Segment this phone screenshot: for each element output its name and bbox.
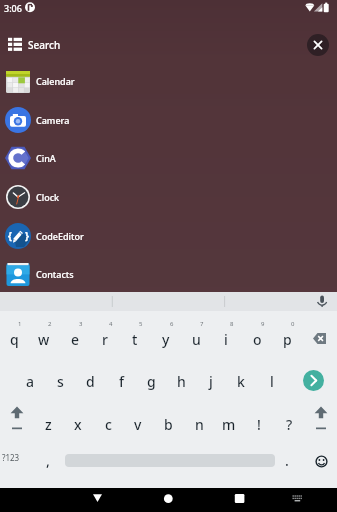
staticText: r bbox=[102, 330, 108, 349]
button[interactable]: x bbox=[64, 411, 92, 437]
staticText: t bbox=[132, 330, 138, 349]
staticText: Camera bbox=[36, 114, 70, 126]
staticText: a bbox=[26, 372, 35, 391]
button[interactable]: u bbox=[182, 326, 210, 352]
staticText: s bbox=[57, 372, 64, 391]
button[interactable]: g bbox=[137, 368, 165, 394]
button[interactable] bbox=[306, 395, 336, 437]
button[interactable]: i bbox=[212, 326, 240, 352]
staticText: Clock bbox=[36, 191, 60, 203]
button[interactable]: f bbox=[107, 368, 135, 394]
staticText: b bbox=[164, 415, 173, 434]
staticText: w bbox=[38, 330, 50, 349]
staticText: v bbox=[134, 415, 142, 434]
button[interactable]: n bbox=[185, 411, 213, 437]
staticText: f bbox=[119, 372, 124, 391]
staticText: 8 bbox=[230, 320, 234, 328]
staticText: . bbox=[285, 451, 289, 470]
staticText: h bbox=[177, 372, 186, 391]
staticText: 3 bbox=[79, 320, 83, 328]
staticText: } bbox=[25, 229, 29, 243]
staticText: n bbox=[195, 415, 204, 434]
button[interactable] bbox=[286, 488, 310, 512]
button[interactable] bbox=[86, 488, 110, 512]
button[interactable]: Camera bbox=[5, 106, 205, 134]
button[interactable]: b bbox=[154, 411, 182, 437]
button[interactable]: e bbox=[61, 326, 89, 352]
button[interactable]: ! bbox=[245, 411, 273, 437]
button[interactable]: r bbox=[91, 326, 119, 352]
button[interactable] bbox=[306, 325, 336, 351]
staticText: l bbox=[270, 372, 274, 391]
staticText: CodeEditor bbox=[36, 230, 84, 242]
button[interactable]: z bbox=[34, 411, 62, 437]
staticText: e bbox=[71, 330, 80, 349]
button[interactable]: m bbox=[215, 411, 243, 437]
staticText: 7 bbox=[200, 320, 204, 328]
staticText: CinA bbox=[36, 152, 56, 164]
staticText: g bbox=[147, 372, 156, 391]
staticText: c bbox=[105, 415, 112, 434]
staticText: ! bbox=[257, 415, 261, 434]
button[interactable]: c bbox=[94, 411, 122, 437]
button[interactable]: q bbox=[0, 326, 28, 352]
staticText: o bbox=[253, 330, 262, 349]
button[interactable]: d bbox=[76, 368, 104, 394]
staticText: 0 bbox=[291, 320, 295, 328]
staticText: Calendar bbox=[36, 75, 75, 87]
button[interactable]: v bbox=[124, 411, 152, 437]
button[interactable]: p bbox=[273, 326, 301, 352]
button[interactable]: t bbox=[121, 326, 149, 352]
button[interactable] bbox=[228, 488, 252, 512]
button[interactable] bbox=[2, 395, 32, 437]
button[interactable]: Contacts bbox=[5, 260, 205, 288]
staticText: 3:06 bbox=[4, 2, 22, 14]
staticText: p bbox=[283, 330, 292, 349]
button[interactable]: h bbox=[167, 368, 195, 394]
staticText: m bbox=[222, 415, 236, 434]
staticText: i bbox=[224, 330, 228, 349]
button[interactable]: . bbox=[273, 447, 301, 473]
button[interactable]: s bbox=[46, 368, 74, 394]
staticText: z bbox=[45, 415, 52, 434]
button[interactable]: Calendar bbox=[5, 67, 205, 95]
button[interactable]: a bbox=[16, 368, 44, 394]
staticText: y bbox=[162, 330, 170, 349]
button[interactable] bbox=[303, 370, 324, 391]
button[interactable]: y bbox=[152, 326, 180, 352]
staticText: 9 bbox=[261, 320, 265, 328]
staticText: 6 bbox=[170, 320, 174, 328]
button[interactable]: Clock bbox=[5, 183, 205, 211]
button[interactable]: j bbox=[197, 368, 225, 394]
staticText: q bbox=[10, 330, 19, 349]
staticText: d bbox=[86, 372, 95, 391]
button[interactable]: { bbox=[5, 222, 205, 250]
button[interactable] bbox=[156, 488, 180, 512]
button[interactable]: CinA bbox=[5, 144, 205, 172]
staticText: Contacts bbox=[36, 268, 74, 280]
staticText: 1 bbox=[18, 320, 22, 328]
button[interactable] bbox=[311, 451, 332, 472]
button[interactable]: Search bbox=[0, 30, 337, 60]
staticText: Search bbox=[28, 38, 61, 52]
button[interactable]: w bbox=[30, 326, 58, 352]
button[interactable]: o bbox=[243, 326, 271, 352]
staticText: 4 bbox=[109, 320, 113, 328]
staticText: 5 bbox=[139, 320, 143, 328]
staticText: { bbox=[8, 229, 12, 243]
staticText: j bbox=[209, 372, 213, 391]
staticText: 2 bbox=[48, 320, 52, 328]
staticText: ?123 bbox=[2, 452, 20, 463]
button[interactable]: l bbox=[258, 368, 286, 394]
staticText: ? bbox=[286, 415, 293, 434]
button[interactable]: k bbox=[227, 368, 255, 394]
button[interactable] bbox=[307, 34, 329, 56]
staticText: u bbox=[192, 330, 201, 349]
staticText: , bbox=[46, 451, 50, 470]
staticText: k bbox=[237, 372, 245, 391]
staticText: x bbox=[74, 415, 82, 434]
button[interactable]: ? bbox=[275, 411, 303, 437]
button[interactable]: , bbox=[34, 447, 62, 473]
